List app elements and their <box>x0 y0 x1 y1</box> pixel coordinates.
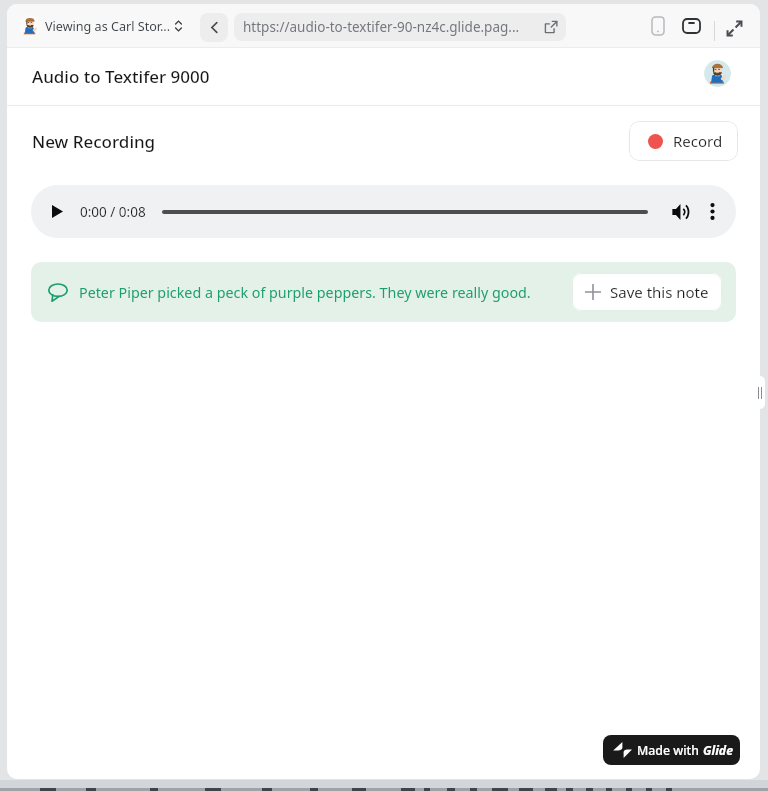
staticText: Audio to Textifer 9000 <box>32 65 210 88</box>
staticText: Save this note <box>610 282 709 302</box>
button[interactable]: Phone preview <box>645 12 671 40</box>
staticText: Peter Piper picked a peck of purple pepp… <box>79 283 531 302</box>
button[interactable]: Back <box>200 13 228 42</box>
button[interactable]: https://audio-to-textifer-90-nz4c.glide.… <box>234 13 566 41</box>
button[interactable]: Save this note <box>572 273 722 311</box>
staticText: New Recording <box>32 130 156 153</box>
button[interactable]: 0:00 / 0:08 <box>31 185 736 238</box>
staticText: 0:00 / 0:08 <box>80 203 146 221</box>
button[interactable]: Viewing as Carl Stor... <box>15 13 189 39</box>
staticText: Record <box>673 131 723 151</box>
staticText: Glide <box>703 742 733 759</box>
button[interactable]: Record <box>629 121 738 161</box>
button[interactable]: Resize window <box>755 376 765 409</box>
button[interactable]: Made with <box>603 735 740 765</box>
button[interactable]: Expand <box>719 14 749 42</box>
button[interactable]: Tablet preview <box>677 12 705 40</box>
staticText: https://audio-to-textifer-90-nz4c.glide.… <box>243 18 538 36</box>
staticText: Viewing as Carl Stor... <box>45 18 171 35</box>
button[interactable]: Account <box>704 60 731 87</box>
staticText: Made with <box>637 742 703 759</box>
